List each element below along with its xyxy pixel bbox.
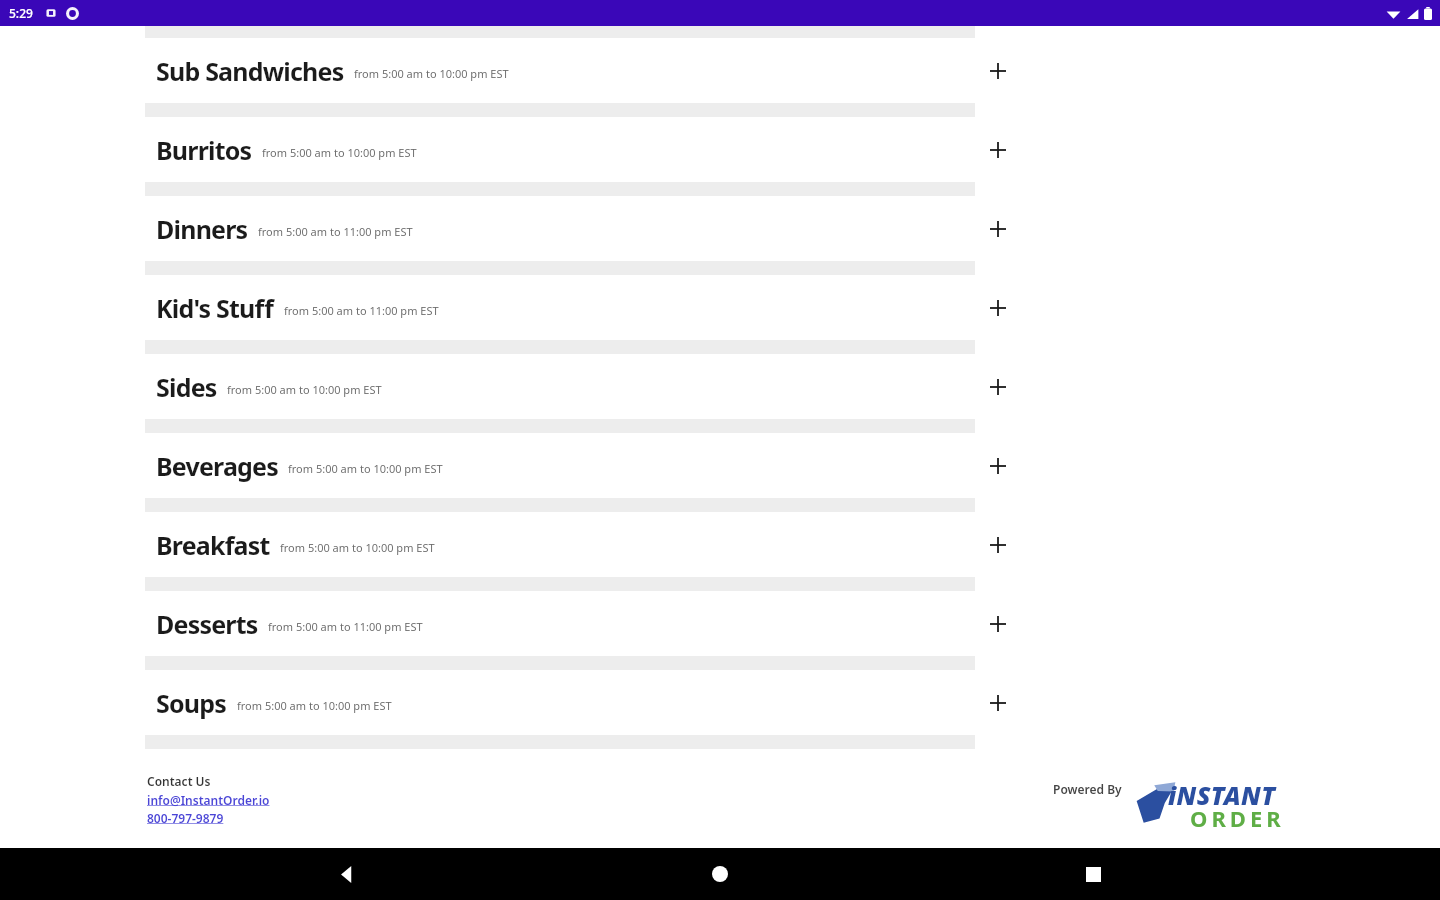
- button[interactable]: Expand Soups: [975, 680, 1021, 726]
- staticText: Burritos: [156, 133, 252, 167]
- staticText: from 5:00 am to 11:00 pm EST: [284, 303, 439, 318]
- button[interactable]: Expand Dinners: [975, 206, 1021, 252]
- button[interactable]: Soups: [0, 670, 1440, 735]
- staticText: iNSTANT: [1168, 778, 1276, 812]
- staticText: from 5:00 am to 11:00 pm EST: [258, 224, 413, 239]
- staticText: 800-797-9879: [147, 810, 224, 826]
- staticText: from 5:00 am to 10:00 pm EST: [262, 145, 417, 160]
- staticText: Desserts: [156, 607, 258, 641]
- staticText: Beverages: [156, 449, 278, 483]
- staticText: Sides: [156, 370, 217, 404]
- staticText: 5:29: [9, 5, 33, 21]
- button[interactable]: Expand Breakfast: [975, 522, 1021, 568]
- staticText: Dinners: [156, 212, 248, 246]
- staticText: Powered By: [1053, 781, 1122, 797]
- staticText: ORDER: [1190, 803, 1285, 829]
- button[interactable]: Breakfast: [0, 512, 1440, 577]
- staticText: from 5:00 am to 10:00 pm EST: [227, 382, 382, 397]
- other: Instant Order logo: [1134, 777, 1310, 829]
- staticText: from 5:00 am to 10:00 pm EST: [354, 66, 509, 81]
- staticText: info@InstantOrder.io: [147, 792, 270, 808]
- button[interactable]: Sides: [0, 354, 1440, 419]
- button[interactable]: Expand Kid's Stuff: [975, 285, 1021, 331]
- staticText: Kid's Stuff: [156, 291, 274, 325]
- button[interactable]: Dinners: [0, 196, 1440, 261]
- staticText: from 5:00 am to 10:00 pm EST: [237, 698, 392, 713]
- button[interactable]: Kid's Stuff: [0, 275, 1440, 340]
- button[interactable]: Back: [321, 848, 373, 900]
- staticText: Sub Sandwiches: [156, 54, 344, 88]
- button[interactable]: Expand Burritos: [975, 127, 1021, 173]
- button[interactable]: 800-797-9879: [147, 810, 224, 826]
- button[interactable]: Recents: [1067, 848, 1119, 900]
- button[interactable]: Expand Sides: [975, 364, 1021, 410]
- button[interactable]: Expand Desserts: [975, 601, 1021, 647]
- staticText: from 5:00 am to 10:00 pm EST: [280, 540, 435, 555]
- staticText: Breakfast: [156, 528, 270, 562]
- staticText: Soups: [156, 686, 227, 720]
- button[interactable]: Expand Beverages: [975, 443, 1021, 489]
- button[interactable]: Burritos: [0, 117, 1440, 182]
- button[interactable]: Expand Sub Sandwiches: [975, 48, 1021, 94]
- button[interactable]: Desserts: [0, 591, 1440, 656]
- button[interactable]: Beverages: [0, 433, 1440, 498]
- button[interactable]: Sub Sandwiches: [0, 38, 1440, 103]
- staticText: from 5:00 am to 11:00 pm EST: [268, 619, 423, 634]
- button[interactable]: info@InstantOrder.io: [147, 792, 270, 808]
- button[interactable]: Home: [694, 848, 746, 900]
- staticText: Contact Us: [147, 773, 211, 789]
- staticText: from 5:00 am to 10:00 pm EST: [288, 461, 443, 476]
